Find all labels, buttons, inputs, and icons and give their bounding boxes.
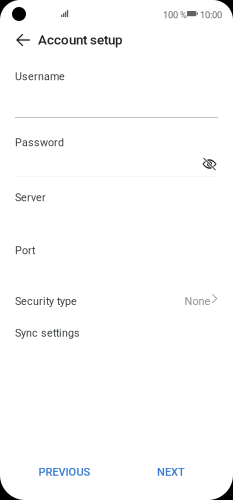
staticText: NEXT: [157, 465, 185, 478]
button[interactable]: Sync settings: [15, 328, 218, 337]
staticText: Account setup: [38, 32, 122, 48]
staticText: Username: [15, 70, 65, 83]
staticText: 100 %: [163, 9, 187, 20]
button[interactable]: NEXT: [141, 459, 201, 485]
staticText: None: [184, 295, 210, 308]
staticText: Port: [15, 244, 35, 257]
staticText: Sync settings: [15, 327, 80, 339]
staticText: Server: [15, 191, 46, 204]
staticText: 10:00: [200, 9, 222, 20]
staticText: Password: [15, 136, 64, 149]
button[interactable]: Security type: [15, 293, 218, 307]
button[interactable]: Back: [8, 25, 38, 55]
staticText: Security type: [15, 295, 77, 307]
staticText: PREVIOUS: [38, 465, 90, 478]
button[interactable]: Show password: [198, 154, 220, 174]
button[interactable]: PREVIOUS: [27, 459, 101, 485]
